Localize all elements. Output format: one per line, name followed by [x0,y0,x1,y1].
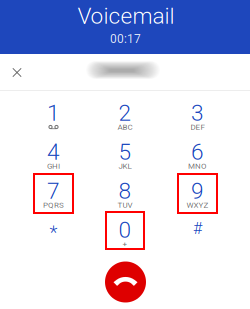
button[interactable]: 9 [177,174,218,213]
staticText: + [122,239,127,249]
button[interactable]: 0 [104,213,145,252]
staticText: DEF [190,122,204,132]
staticText: 0 [118,217,131,243]
staticText: GHI [47,161,60,171]
staticText: PQRS [43,200,64,210]
button[interactable]: Close [2,58,32,86]
staticText: 9 [191,178,204,204]
staticText: 2 [118,100,131,126]
staticText: TUV [117,200,132,210]
staticText: 8 [118,178,131,204]
staticText: # [193,219,202,238]
staticText: 4 [47,139,60,165]
button[interactable]: 7 [33,174,74,213]
button[interactable]: 5 [104,135,145,174]
button[interactable]: # [177,213,218,252]
staticText: 1 [47,100,60,126]
staticText: 5 [118,139,131,165]
staticText: JKL [118,161,131,171]
button[interactable]: 8 [104,174,145,213]
staticText: 3 [191,100,204,126]
button[interactable]: 1 [33,96,74,135]
button[interactable]: 2 [104,96,145,135]
button[interactable]: 3 [177,96,218,135]
staticText: * [49,221,57,243]
staticText: WXYZ [186,200,208,210]
staticText: MNO [188,161,207,171]
staticText: ABC [117,122,132,132]
button[interactable]: 6 [177,135,218,174]
staticText: 00:17 [110,32,141,46]
button[interactable]: 4 [33,135,74,174]
button[interactable]: End call [105,261,146,302]
staticText: Voicemail [77,3,174,29]
staticText: 6 [191,139,204,165]
staticText: 7 [47,178,60,204]
button[interactable]: * [33,213,74,252]
